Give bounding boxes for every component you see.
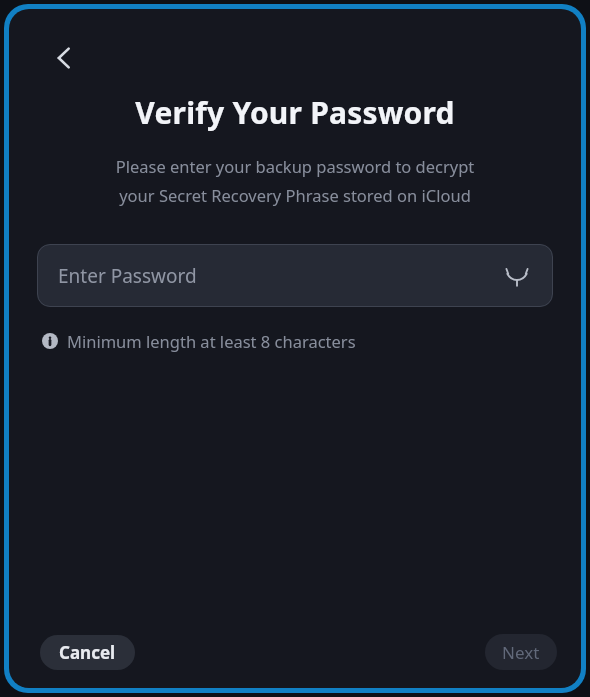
button[interactable]: Next xyxy=(485,634,557,670)
staticText: Verify Your Password xyxy=(9,92,581,133)
button[interactable]: Show password xyxy=(502,261,532,291)
button[interactable]: Back xyxy=(42,36,86,80)
staticText: Minimum length at least 8 characters xyxy=(67,330,356,352)
staticText: Please enter your backup password to dec… xyxy=(35,155,555,207)
staticText: Cancel xyxy=(59,641,116,664)
button[interactable]: Cancel xyxy=(40,635,135,670)
staticText: Enter Password xyxy=(58,263,197,289)
button[interactable]: Enter Password xyxy=(37,244,553,307)
staticText: Next xyxy=(502,641,540,664)
